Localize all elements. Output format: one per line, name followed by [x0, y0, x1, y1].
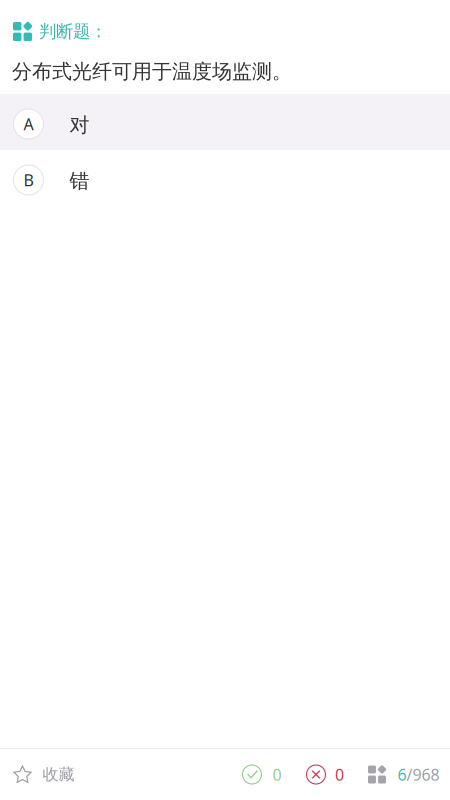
staticText: 错	[69, 169, 89, 193]
staticText: /968	[406, 764, 439, 785]
staticText: 0	[335, 764, 344, 785]
button[interactable]: A	[0, 94, 450, 150]
button[interactable]: 收藏	[0, 749, 74, 800]
staticText: 分布式光纤可用于温度场监测。	[12, 59, 292, 84]
staticText: 6	[397, 764, 406, 785]
button[interactable]: 答对 0	[242, 749, 281, 800]
staticText: 收藏	[42, 765, 74, 784]
button[interactable]: 答题卡 6/968	[344, 749, 450, 800]
staticText: B	[23, 169, 33, 191]
staticText: 判断题：	[39, 21, 107, 42]
staticText: 对	[69, 113, 89, 137]
button[interactable]: B	[0, 150, 450, 206]
staticText: 0	[272, 764, 281, 785]
staticText: A	[23, 113, 33, 135]
button[interactable]: 答错 0	[281, 749, 344, 800]
